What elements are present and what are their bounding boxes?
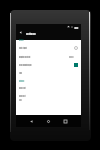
staticText: Settings [26, 31, 36, 34]
staticText: Settings [26, 32, 36, 35]
staticText: Network [19, 80, 25, 82]
button[interactable]: Proxy port [16, 92, 81, 103]
button[interactable]: Clear navigation bar [16, 61, 81, 69]
staticText: 10:00 [74, 26, 79, 28]
button[interactable]: Recent apps [61, 117, 70, 126]
staticText: Proxy port [19, 95, 26, 97]
staticText: 8080 [19, 99, 22, 101]
staticText: Proxy host [19, 88, 26, 90]
staticText: Logs [19, 72, 22, 74]
staticText: 8080 [19, 100, 22, 102]
staticText: Websites shortcut [19, 56, 31, 58]
button[interactable]: Back [27, 117, 36, 126]
staticText: Websites shortcut [19, 57, 31, 59]
button[interactable]: Websites shortcut [16, 53, 81, 61]
staticText: Normal [69, 56, 74, 58]
button[interactable]: Proxy host [16, 84, 81, 92]
staticText: General [19, 39, 24, 41]
staticText: Start at boot [19, 47, 27, 49]
button[interactable]: Home [44, 117, 53, 126]
staticText: Start at boot [19, 48, 27, 50]
staticText: Proxy host [19, 87, 26, 89]
staticText: Clear navigation bar [19, 65, 32, 67]
staticText: General [19, 40, 24, 42]
button[interactable]: Start at boot [16, 43, 81, 53]
button[interactable]: Logs [16, 69, 81, 77]
staticText: Logs [19, 73, 22, 75]
staticText: 10:00 [74, 27, 79, 29]
staticText: Normal [69, 57, 74, 59]
button[interactable]: Navigate up [17, 29, 24, 36]
staticText: Proxy port [19, 96, 26, 98]
staticText: Clear navigation bar [19, 64, 32, 66]
staticText: Network [19, 81, 25, 83]
